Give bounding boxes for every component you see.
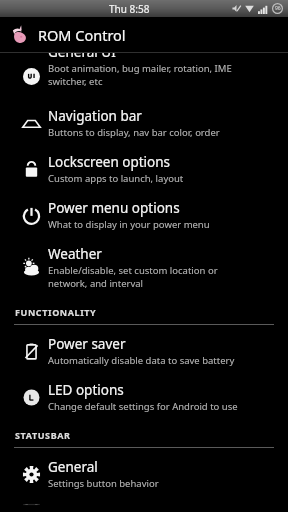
- staticText: Thu 8:58: [109, 2, 150, 16]
- button[interactable]: Navigation bar: [0, 100, 288, 146]
- staticText: Buttons to display, nav bar color, order: [48, 126, 220, 139]
- staticText: Boot animation, bug mailer, rotation, IM…: [48, 62, 232, 88]
- button[interactable]: LED options: [0, 374, 288, 420]
- staticText: 96: [275, 5, 281, 12]
- staticText: Navigation bar: [48, 107, 142, 125]
- staticText: Power menu options: [48, 199, 180, 217]
- staticText: Custom apps to launch, layout: [48, 172, 184, 185]
- button[interactable]: Weather: [0, 238, 288, 297]
- staticText: Enable/disable, set custom location or n…: [48, 264, 218, 290]
- staticText: Lockscreen options: [48, 153, 171, 171]
- staticText: FUNCTIONALITY: [15, 306, 97, 318]
- staticText: Power saver: [48, 335, 126, 353]
- staticText: STATUSBAR: [15, 429, 71, 441]
- staticText: ROM Control: [38, 25, 126, 45]
- button[interactable]: Lockscreen options: [0, 146, 288, 192]
- staticText: LED options: [48, 381, 124, 399]
- staticText: What to display in your power menu: [48, 218, 210, 231]
- button[interactable]: General: [0, 451, 288, 497]
- staticText: General UI: [48, 53, 116, 61]
- button[interactable]: Toggles: [0, 497, 288, 512]
- staticText: General: [48, 458, 98, 476]
- button[interactable]: Power saver: [0, 328, 288, 374]
- button[interactable]: Power menu options: [0, 192, 288, 238]
- staticText: Automatically disable data to save batte…: [48, 354, 235, 367]
- staticText: Weather: [48, 245, 102, 263]
- button[interactable]: General UI: [0, 53, 288, 100]
- staticText: Change default settings for Android to u…: [48, 400, 238, 413]
- staticText: Settings button behavior: [48, 477, 159, 490]
